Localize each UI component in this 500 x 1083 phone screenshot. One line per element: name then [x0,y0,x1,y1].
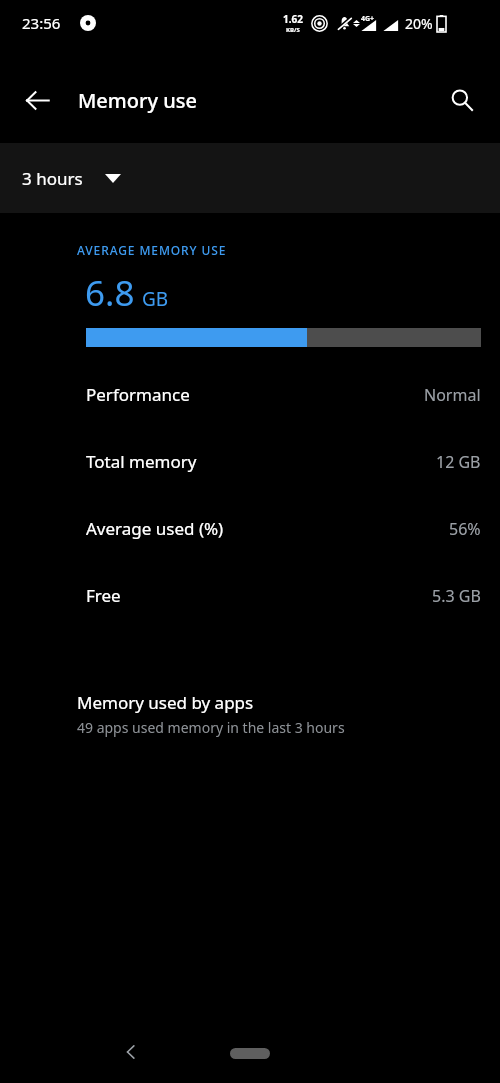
staticText: 4G+ [361,14,375,24]
staticText: 20% [405,14,433,33]
staticText: 3 hours [22,167,83,190]
button[interactable]: Memory used by apps [0,687,500,747]
staticText: Total memory [86,450,197,473]
staticText: 12 GB [436,451,481,473]
staticText: Memory used by apps [77,691,254,714]
staticText: AVERAGE MEMORY USE [77,242,227,258]
button[interactable]: Search [438,76,486,124]
staticText: Normal [424,384,481,406]
staticText: KB/S [286,26,300,34]
staticText: Memory use [78,87,197,114]
button[interactable]: Performance [0,361,500,428]
staticText: GB [142,286,169,312]
button[interactable]: Back [107,1028,155,1076]
staticText: 1.62 [283,12,303,26]
staticText: Free [86,584,121,607]
staticText: 49 apps used memory in the last 3 hours [77,718,345,737]
staticText: 5.3 GB [432,585,481,607]
staticText: Performance [86,383,190,406]
button[interactable]: Average used (%) [0,495,500,562]
staticText: 23:56 [22,13,61,33]
staticText: 6.8 [85,269,135,317]
button[interactable]: Free [0,562,500,629]
button[interactable]: Total memory [0,428,500,495]
button[interactable]: Home [230,1048,270,1059]
button[interactable]: 3 hours [0,143,137,213]
button[interactable]: Back [13,76,61,124]
staticText: Average used (%) [86,517,224,540]
staticText: 56% [449,518,481,540]
